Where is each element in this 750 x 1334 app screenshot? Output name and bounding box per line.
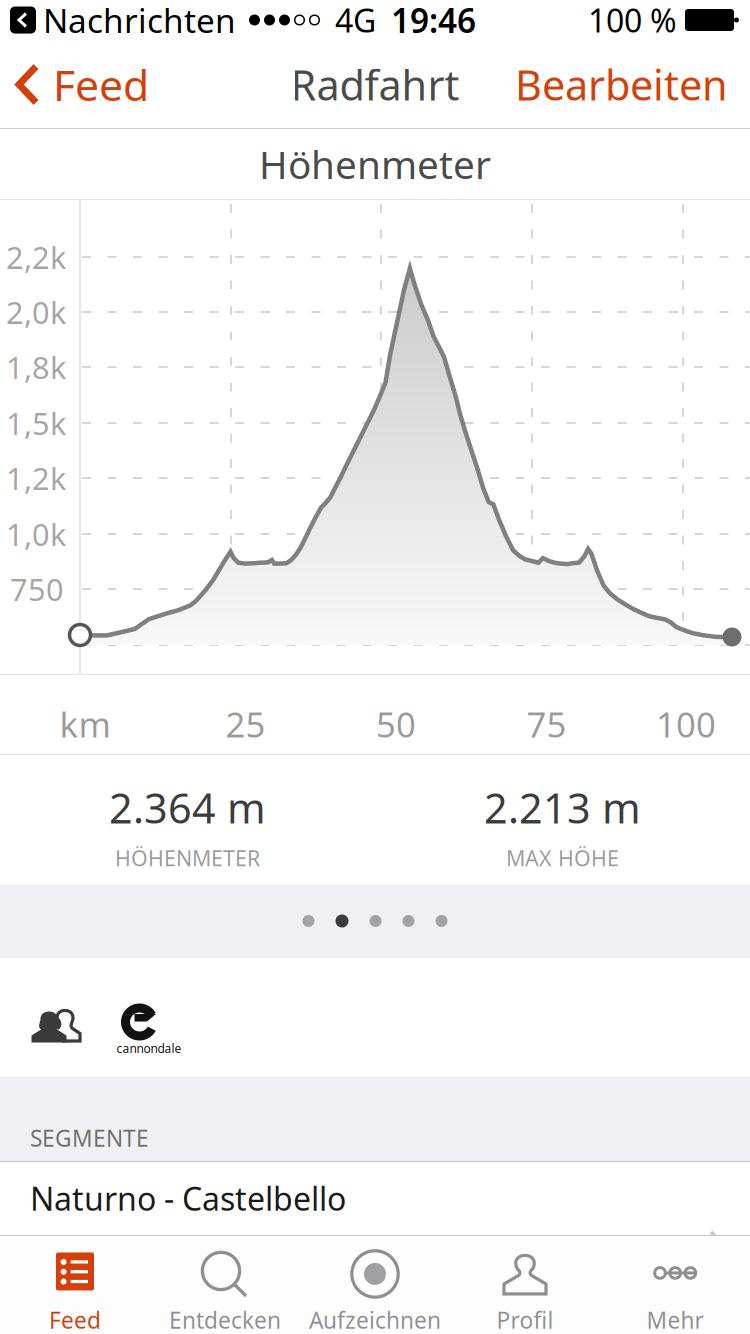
staticText: 1,5k	[6, 403, 66, 443]
staticText: SEGMENTE	[30, 1123, 149, 1153]
staticText: Bearbeiten	[515, 57, 728, 112]
staticText: Mehr	[646, 1305, 703, 1334]
staticText: 7,6 km · 19:33 · 23,5 km/h	[30, 1231, 386, 1270]
button[interactable]: Entdecken	[150, 1236, 300, 1334]
staticText: 1,2k	[6, 458, 66, 498]
button[interactable]: Naturno - Castelbello	[0, 1162, 750, 1277]
staticText: Profil	[496, 1305, 553, 1334]
staticText: 4G	[335, 0, 376, 41]
staticText: 1,8k	[6, 347, 66, 387]
staticText: 19:46	[391, 0, 476, 42]
staticText: Nachrichten	[43, 0, 236, 42]
staticText: Aufzeichnen	[309, 1305, 441, 1334]
staticText: km	[59, 701, 110, 747]
staticText: 2.213 m	[484, 780, 641, 835]
staticText: 100	[656, 701, 716, 747]
staticText: 2,0k	[6, 292, 66, 332]
button[interactable]: Athletes	[30, 1008, 82, 1044]
staticText: Feed	[53, 56, 149, 113]
button[interactable]: Gear: Cannondale	[123, 1003, 183, 1058]
staticText: Naturno - Castelbello	[30, 1177, 346, 1219]
staticText: MAX HÖHE	[506, 844, 619, 872]
button[interactable]: Mehr	[600, 1236, 750, 1334]
staticText: 25	[225, 701, 265, 747]
staticText: 750	[10, 569, 64, 609]
staticText: 75	[526, 701, 566, 747]
staticText: Feed	[49, 1305, 101, 1334]
staticText: Entdecken	[169, 1305, 281, 1334]
button[interactable]: Bearbeiten	[515, 45, 750, 124]
staticText: cannondale	[116, 1040, 181, 1056]
staticText: 100 %	[588, 0, 677, 41]
button[interactable]: Feed	[0, 46, 149, 123]
staticText: 2,2k	[6, 237, 66, 277]
staticText: HÖHENMETER	[115, 844, 260, 872]
button[interactable]: Aufzeichnen	[300, 1236, 450, 1334]
button[interactable]: Back to Nachrichten	[0, 0, 236, 42]
button[interactable]: Profil	[450, 1236, 600, 1334]
button[interactable]: Feed	[0, 1236, 150, 1334]
staticText: Radfahrt	[290, 57, 459, 112]
staticText: 1,0k	[6, 514, 66, 554]
staticText: 2.364 m	[109, 780, 266, 835]
staticText: Höhenmeter	[259, 138, 491, 190]
staticText: 50	[376, 701, 416, 747]
